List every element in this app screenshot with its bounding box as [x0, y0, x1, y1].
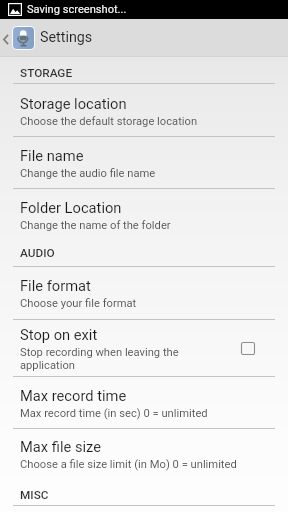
button[interactable]: Navigate up	[0, 19, 35, 57]
button[interactable]: Stop on exit	[241, 342, 255, 355]
button[interactable]: File format	[0, 267, 288, 320]
staticText: Max record time (in sec) 0 = unlimited	[20, 407, 208, 420]
button[interactable]: Max record time	[0, 377, 288, 429]
button[interactable]: Stop on exit	[0, 320, 288, 377]
staticText: Choose the default storage location	[20, 115, 198, 128]
staticText: AUDIO	[20, 246, 55, 260]
staticText: STORAGE	[20, 66, 73, 80]
staticText: Choose a file size limit (in Mo) 0 = unl…	[20, 458, 237, 471]
staticText: Change the audio file name	[20, 167, 156, 180]
staticText: Stop on exit	[20, 326, 98, 343]
staticText: File format	[20, 277, 91, 294]
other: Screenshot notification	[8, 3, 22, 16]
staticText: Storage location	[20, 95, 127, 112]
staticText: Max file size	[20, 438, 101, 455]
staticText: Stop recording when leaving the applicat…	[20, 346, 206, 372]
staticText: Folder Location	[20, 199, 122, 216]
staticText: MISC	[20, 488, 49, 502]
staticText: Choose your file format	[20, 297, 137, 310]
staticText: Max record time	[20, 387, 127, 404]
staticText: Settings	[40, 29, 93, 46]
button[interactable]: Folder Location	[0, 189, 288, 241]
button[interactable]: Storage location	[0, 84, 288, 137]
staticText: Saving screenshot...	[27, 3, 127, 16]
button[interactable]: Max file size	[0, 429, 288, 480]
staticText: Change the name of the folder	[20, 219, 171, 232]
button[interactable]: File name	[0, 137, 288, 189]
staticText: File name	[20, 147, 84, 164]
